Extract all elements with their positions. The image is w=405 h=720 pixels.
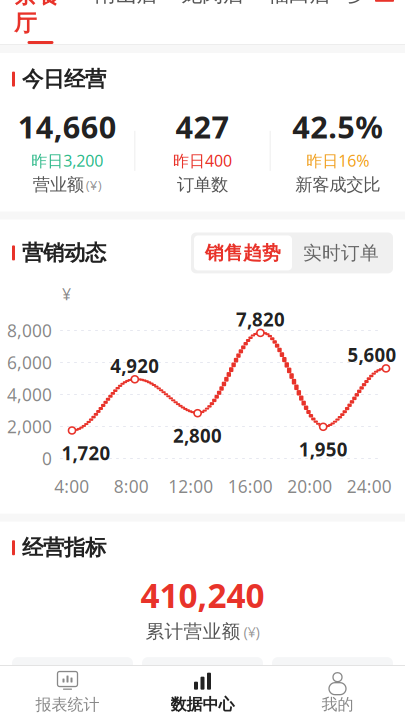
- staticText: 福田店: [267, 0, 330, 7]
- staticText: 数据中心: [170, 695, 234, 714]
- staticText: 0: [42, 447, 52, 470]
- staticText: 8:00: [114, 475, 149, 498]
- button[interactable]: 销售趋势: [194, 235, 292, 270]
- staticText: 14,660: [18, 106, 117, 147]
- button[interactable]: 订单数: [12, 657, 133, 720]
- staticText: 实时订单: [303, 241, 379, 264]
- staticText: 销售趋势: [205, 241, 281, 264]
- staticText: 营业额: [33, 174, 84, 195]
- staticText: 410,240: [140, 573, 264, 617]
- staticText: 罗: [348, 0, 369, 7]
- staticText: 16:00: [228, 475, 273, 498]
- staticText: 昨日3,200: [31, 150, 103, 171]
- staticText: 1,950: [299, 437, 348, 462]
- staticText: 南山店: [94, 0, 157, 7]
- button[interactable]: 数据中心: [135, 665, 270, 720]
- staticText: 昨日16%: [306, 150, 369, 171]
- staticText: 427: [175, 106, 229, 147]
- button[interactable]: 龙岗店: [175, 0, 250, 14]
- staticText: 下单人数: [168, 668, 236, 689]
- staticText: 订单数: [177, 174, 228, 195]
- staticText: 24:00: [347, 475, 392, 498]
- button[interactable]: 南山店: [88, 0, 163, 14]
- staticText: 订单数: [47, 668, 98, 689]
- staticText: 经营指标: [22, 535, 106, 561]
- staticText: 42.5%: [292, 106, 383, 147]
- staticText: 1,998: [175, 693, 229, 720]
- button[interactable]: 菜单: [364, 0, 405, 9]
- staticText: 昨日400: [173, 150, 232, 171]
- button[interactable]: 实时订单: [292, 235, 390, 270]
- staticText: 龙岗店: [181, 0, 244, 7]
- button[interactable]: 下单人数: [142, 657, 263, 720]
- staticText: 12:00: [168, 475, 213, 498]
- staticText: (¥): [243, 622, 259, 641]
- staticText: 营销动态: [22, 240, 106, 266]
- staticText: 6,000: [7, 351, 52, 374]
- button[interactable]: 报表统计: [0, 664, 135, 720]
- staticText: 5,600: [347, 342, 396, 367]
- staticText: ¥: [62, 283, 71, 305]
- staticText: i餐饮茶餐厅: [14, 0, 67, 37]
- staticText: 2,800: [173, 423, 222, 448]
- button[interactable]: 罗: [348, 0, 364, 14]
- staticText: 1,720: [61, 440, 110, 465]
- staticText: 我的: [321, 695, 353, 714]
- staticText: 2,000: [7, 415, 52, 438]
- staticText: 入驻分店: [298, 668, 366, 689]
- staticText: 4,000: [7, 383, 52, 406]
- button[interactable]: 入驻分店: [272, 657, 393, 720]
- button[interactable]: 我的: [270, 665, 405, 720]
- button[interactable]: i餐饮茶餐厅: [0, 0, 77, 44]
- button[interactable]: 福田店: [261, 0, 336, 14]
- staticText: (¥): [86, 176, 102, 194]
- staticText: 累计营业额: [145, 620, 240, 643]
- staticText: 21: [320, 693, 344, 720]
- staticText: 新客成交比: [295, 174, 380, 195]
- staticText: 8,000: [7, 319, 52, 342]
- staticText: 今日经营: [22, 66, 106, 92]
- staticText: 20:00: [287, 475, 332, 498]
- staticText: 报表统计: [35, 695, 99, 714]
- staticText: 7,820: [236, 307, 285, 332]
- staticText: 1,998: [45, 693, 99, 720]
- staticText: 4,920: [110, 353, 159, 378]
- staticText: 4:00: [54, 475, 89, 498]
